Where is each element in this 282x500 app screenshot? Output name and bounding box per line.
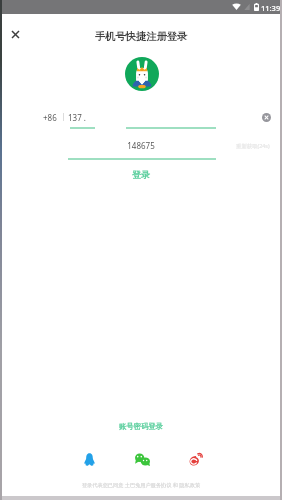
button[interactable]: Phone number field [40, 106, 260, 130]
button[interactable]: 账号密码登录 [0, 419, 282, 433]
button[interactable]: WeChat login [132, 449, 153, 470]
staticText: 手机号快捷注册登录 [0, 30, 282, 43]
staticText: 137 . [68, 112, 86, 123]
button[interactable]: Close [5, 24, 25, 44]
button[interactable]: 重新获取(24s) [236, 142, 270, 149]
button[interactable]: Verification code field [40, 137, 220, 161]
button[interactable]: Weibo login [185, 449, 206, 470]
button[interactable]: QQ login [79, 449, 100, 470]
button[interactable]: Clear [259, 110, 274, 125]
staticText: 登录代表您已同意 土巴兔用户服务协议 和 隐私政策 [0, 481, 282, 488]
staticText: 148675 [0, 140, 282, 151]
staticText: 账号密码登录 [119, 422, 163, 431]
staticText: 登录 [132, 169, 150, 180]
staticText: 11:39 [261, 3, 281, 13]
button[interactable]: 登录 [0, 167, 282, 181]
staticText: +86 [43, 112, 57, 123]
